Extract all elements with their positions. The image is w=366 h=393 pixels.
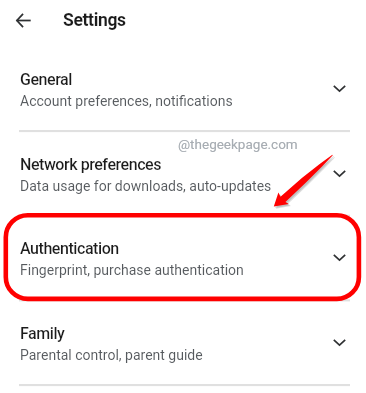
staticText: Data usage for downloads, auto-updates [20,178,272,194]
staticText: Parental control, parent guide [20,347,203,363]
button[interactable]: General [0,48,366,133]
staticText: Family [20,324,65,343]
button[interactable]: Authentication [0,217,366,302]
staticText: Account preferences, notifications [20,93,233,109]
button[interactable]: Network preferences [0,133,366,218]
staticText: Settings [63,10,126,31]
staticText: Authentication [20,239,119,258]
button[interactable]: Back [0,0,46,41]
staticText: @thegeekpage.com [178,136,298,152]
staticText: Network preferences [20,155,162,174]
staticText: Fingerprint, purchase authentication [20,262,244,278]
button[interactable]: Family [0,302,366,387]
staticText: General [20,70,72,89]
